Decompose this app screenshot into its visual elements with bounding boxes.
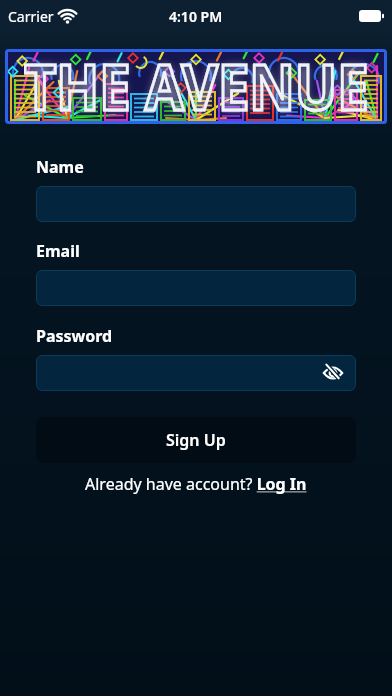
button[interactable]	[36, 270, 356, 306]
staticText: Password	[36, 325, 113, 347]
button[interactable]: Already have account? Log In	[85, 473, 307, 495]
staticText: 4:10 PM	[169, 7, 223, 26]
button[interactable]	[322, 362, 344, 384]
staticText: Sign Up	[166, 429, 226, 451]
staticText: Carrier	[8, 7, 54, 26]
button[interactable]	[36, 186, 356, 222]
staticText: THE AVENUE	[24, 42, 369, 126]
staticText: Name	[36, 156, 84, 178]
button[interactable]	[36, 355, 356, 391]
staticText: Email	[36, 240, 80, 262]
button[interactable]: Sign Up	[36, 417, 356, 463]
